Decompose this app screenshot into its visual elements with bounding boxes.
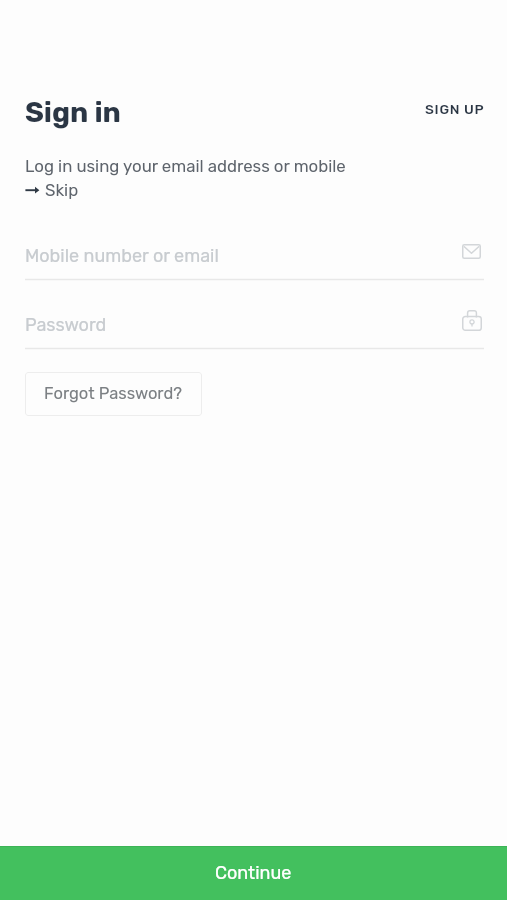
button[interactable] xyxy=(25,240,484,282)
staticText: Sign in xyxy=(25,95,121,129)
button[interactable]: SIGN UP xyxy=(423,97,487,121)
button[interactable]: Skip xyxy=(25,180,79,200)
staticText: SIGN UP xyxy=(425,101,485,117)
staticText: Password xyxy=(25,314,107,335)
staticText: Mobile number or email xyxy=(25,245,219,266)
staticText: Forgot Password? xyxy=(44,384,183,404)
button[interactable]: Forgot Password? xyxy=(25,372,202,416)
button[interactable]: Continue xyxy=(0,846,507,900)
staticText: Log in using your email address or mobil… xyxy=(25,156,346,176)
other: Skip xyxy=(25,182,40,198)
other: Password xyxy=(462,310,482,331)
staticText: Skip xyxy=(45,180,79,200)
other: Email xyxy=(462,244,481,259)
staticText: Continue xyxy=(215,862,292,883)
button[interactable] xyxy=(25,309,484,351)
